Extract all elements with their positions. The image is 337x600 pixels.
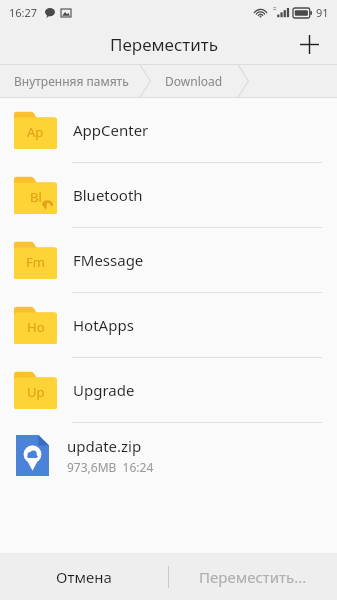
button[interactable]: Ap — [0, 98, 337, 162]
button[interactable]: update.zip — [0, 423, 337, 487]
staticText: Отмена — [56, 567, 112, 587]
staticText: HotApps — [73, 315, 134, 335]
staticText: 16:27 — [9, 5, 38, 20]
button[interactable]: Отмена — [0, 553, 168, 600]
staticText: 973,6MB 16:24 — [67, 459, 154, 475]
staticText: update.zip — [67, 436, 142, 456]
staticText: Bluetooth — [73, 185, 143, 205]
button[interactable]: Внутренняя память — [14, 73, 129, 89]
staticText: Ho — [27, 318, 45, 336]
button[interactable]: Bl — [0, 163, 337, 227]
button[interactable]: Download — [165, 73, 223, 89]
staticText: AppCenter — [73, 120, 149, 140]
staticText: Внутренняя память — [14, 73, 129, 89]
staticText: 91 — [316, 5, 329, 20]
staticText: Up — [27, 383, 45, 401]
button[interactable]: Add — [289, 24, 329, 64]
staticText: Upgrade — [73, 380, 135, 400]
button[interactable]: Fm — [0, 228, 337, 292]
staticText: FMessage — [73, 250, 144, 270]
staticText: Fm — [26, 253, 45, 271]
staticText: Bl — [30, 188, 42, 206]
staticText: Переместить — [110, 33, 218, 56]
button[interactable]: Ho — [0, 293, 337, 357]
staticText: Переместить... — [199, 567, 307, 587]
button[interactable]: Up — [0, 358, 337, 422]
staticText: Ap — [27, 123, 44, 141]
button[interactable]: Переместить... — [169, 553, 337, 600]
staticText: Download — [165, 73, 223, 89]
